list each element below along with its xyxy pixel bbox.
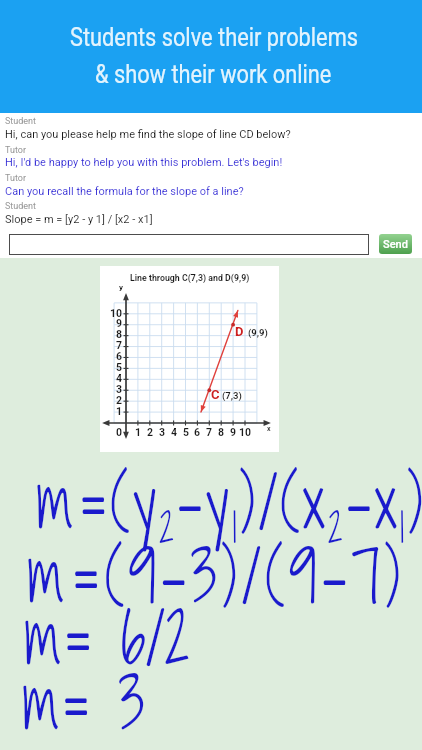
staticText: m=(y2-y1)/(x2-x1) (37, 453, 422, 557)
staticText: Tutor (5, 173, 26, 184)
staticText: m= 3 (23, 654, 145, 750)
staticText: & show their work online (95, 59, 332, 90)
staticText: 5 (183, 426, 190, 438)
staticText: 6 (194, 426, 201, 438)
staticText: 4 (171, 426, 178, 438)
staticText: Hi, can you please help me find the slop… (5, 128, 291, 141)
staticText: Tutor (5, 145, 26, 156)
staticText: C (211, 387, 220, 402)
staticText: 6 (116, 350, 123, 362)
staticText: Student (5, 116, 37, 127)
staticText: 4 (116, 372, 123, 384)
staticText: m=(9-3)/(9-7) (28, 527, 406, 626)
staticText: D (235, 324, 244, 339)
staticText: 2 (116, 394, 123, 406)
staticText: 7 (116, 339, 123, 351)
staticText: 10 (239, 426, 252, 438)
staticText: Students solve their problems (70, 22, 358, 53)
staticText: m= 6/2 (25, 589, 190, 688)
staticText: 5 (116, 361, 123, 373)
staticText: 7 (206, 426, 213, 438)
staticText: 9 (230, 426, 237, 438)
staticText: Send (383, 238, 408, 251)
staticText: (9,9) (248, 327, 268, 338)
staticText: 9 (116, 317, 123, 329)
staticText: 8 (116, 328, 123, 340)
staticText: 3 (159, 426, 166, 438)
staticText: y (119, 283, 124, 292)
staticText: 3 (116, 383, 123, 395)
button[interactable]: Send (379, 234, 412, 254)
staticText: x (267, 425, 271, 433)
staticText: 0 (116, 426, 123, 438)
staticText: Line through C(7,3) and D(9,9) (130, 273, 250, 283)
staticText: Hi, I'd be happy to help you with this p… (5, 156, 283, 169)
staticText: Student (5, 201, 37, 212)
staticText: Can you recall the formula for the slope… (5, 185, 244, 198)
staticText: 1 (135, 426, 142, 438)
staticText: 1 (116, 405, 123, 417)
staticText: Slope = m = [y2 - y 1] / [x2 - x1] (5, 213, 153, 226)
button[interactable]: Message input field (9, 234, 369, 255)
staticText: (7,3) (222, 390, 242, 401)
staticText: 8 (218, 426, 225, 438)
staticText: 2 (147, 426, 154, 438)
staticText: 10 (110, 307, 123, 319)
